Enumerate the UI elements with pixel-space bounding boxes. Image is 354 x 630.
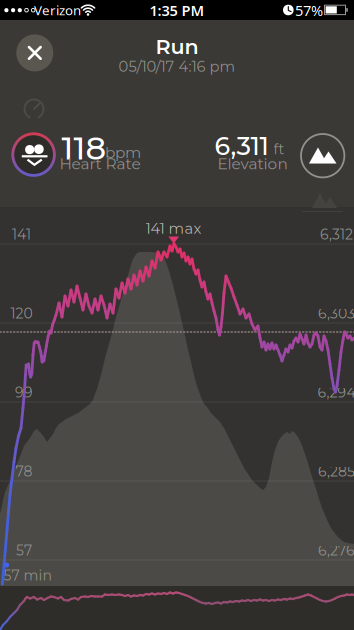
staticText: 6,294	[317, 384, 354, 401]
staticText: Elevation	[217, 154, 287, 173]
staticText: 57%	[295, 0, 323, 20]
staticText: bpm	[105, 143, 141, 162]
staticText: ft	[273, 141, 284, 158]
staticText: 120	[10, 305, 32, 322]
staticText: 6,276	[318, 542, 354, 559]
staticText: 1:35 PM	[149, 0, 204, 20]
staticText: Verizon	[34, 1, 81, 19]
staticText: 6,285	[318, 463, 354, 480]
staticText: 6,312	[320, 226, 353, 243]
staticText: 118	[61, 128, 106, 167]
staticText: 6,303	[318, 305, 354, 322]
staticText: 141	[12, 226, 31, 243]
staticText: 57 min	[3, 567, 51, 584]
staticText: 99	[15, 384, 33, 401]
staticText: 57	[16, 542, 32, 559]
staticText: 78	[15, 463, 32, 480]
staticText: 141 max	[145, 220, 201, 237]
staticText: Heart Rate	[59, 154, 140, 173]
staticText: 05/10/17 4:16 pm	[118, 58, 235, 75]
staticText: Run	[155, 34, 198, 59]
staticText: 6,311	[214, 131, 268, 161]
button[interactable]: Close	[16, 34, 53, 71]
